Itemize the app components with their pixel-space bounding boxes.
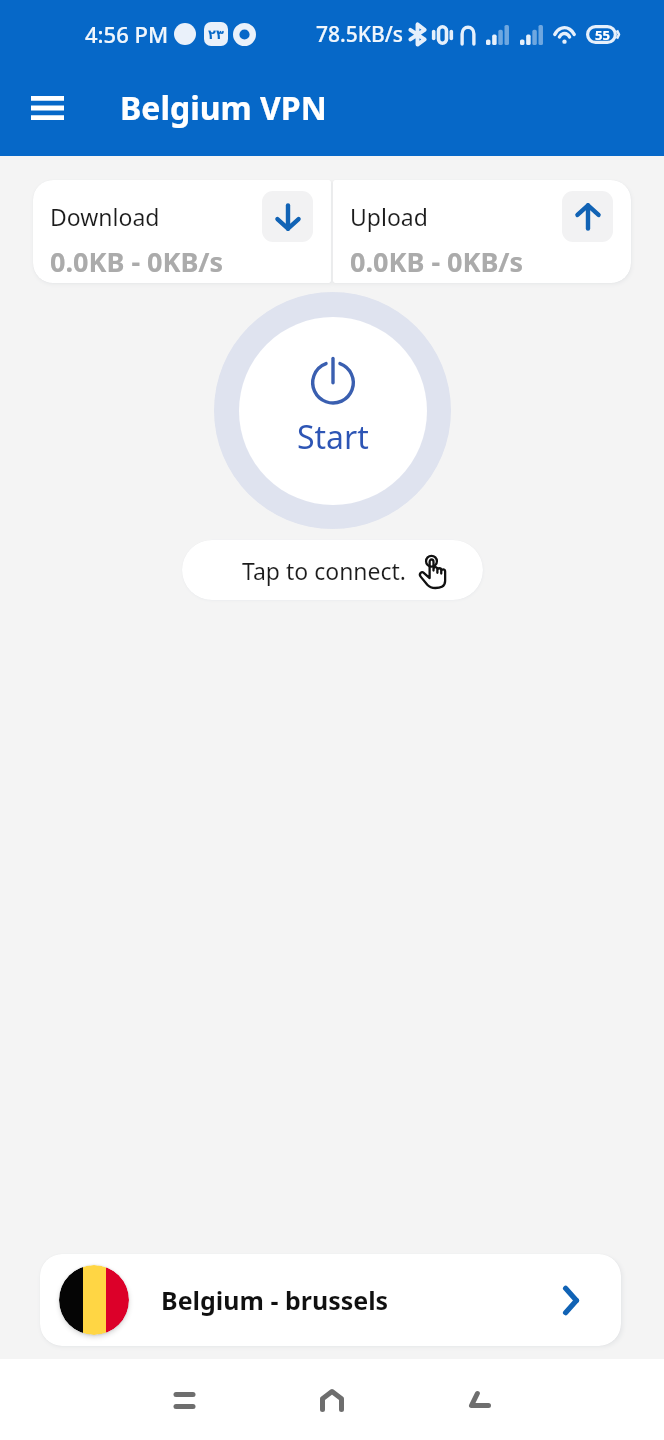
button[interactable]: Open navigation menu [15,76,79,140]
staticText: 4:56 PM [85,19,169,49]
staticText: 0.0KB - 0KB/s [50,243,224,280]
staticText: Belgium VPN [120,86,327,130]
button[interactable]: Recent apps [147,1363,221,1437]
button[interactable]: Home [295,1363,369,1437]
staticText: ۲۳ [208,27,224,42]
staticText: 78.5KB/s [316,20,404,49]
button[interactable]: Download [33,180,331,283]
staticText: Download [50,201,160,232]
button[interactable]: Belgium - brussels [40,1254,621,1346]
staticText: Belgium - brussels [161,1283,389,1317]
staticText: 55 [595,26,610,44]
staticText: Tap to connect. [242,555,407,586]
staticText: Upload [350,201,428,232]
staticText: 0.0KB - 0KB/s [350,243,524,280]
staticText: Start [297,415,369,459]
button[interactable]: Start [214,292,451,529]
button[interactable]: Tap to connect. [182,540,483,600]
button[interactable]: Back [443,1363,517,1437]
button[interactable]: Upload [333,180,631,283]
